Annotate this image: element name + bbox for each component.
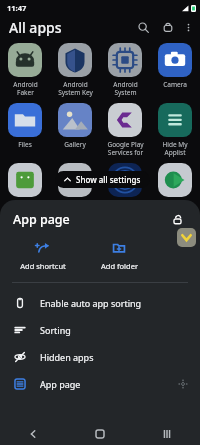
button[interactable]: Hidden apps [0, 343, 200, 370]
button[interactable]: Google Play Services for [100, 99, 150, 159]
staticText: Android System Key [58, 80, 93, 97]
staticText: Camera [163, 80, 187, 89]
staticText: App page [13, 211, 70, 228]
button[interactable]: Camera [150, 39, 200, 99]
button[interactable] [100, 159, 150, 219]
button[interactable]: Android System Key [50, 39, 100, 99]
staticText: Android Faker [13, 80, 38, 97]
staticText: All apps [9, 18, 62, 37]
staticText: Gallery [64, 140, 86, 149]
staticText: Add shortcut [20, 261, 66, 271]
button[interactable]: Add folder [81, 240, 157, 271]
button[interactable]: Sorting [0, 316, 200, 343]
button[interactable] [50, 159, 100, 219]
button[interactable]: Store [157, 16, 179, 38]
staticText: Show all settings [76, 174, 141, 185]
staticText: Google Play Services for [107, 140, 144, 157]
staticText: App page [40, 378, 81, 390]
button[interactable]: Enable auto app sorting [0, 289, 200, 316]
staticText: Hidden apps [40, 351, 94, 363]
button[interactable]: Home [66, 423, 133, 445]
button[interactable]: Add shortcut [5, 240, 81, 271]
staticText: Enable auto app sorting [40, 297, 142, 309]
staticText: Sorting [40, 324, 71, 336]
button[interactable] [150, 159, 200, 219]
button[interactable]: More options [179, 18, 197, 36]
button[interactable]: Show all settings [55, 171, 150, 188]
button[interactable]: Files [0, 99, 50, 159]
staticText: Android System [113, 80, 138, 97]
button[interactable]: Lock [167, 209, 187, 229]
button[interactable]: Gallery [50, 99, 100, 159]
button[interactable]: Search [132, 16, 154, 38]
staticText: Add folder [101, 261, 138, 271]
staticText: Files [18, 140, 32, 149]
button[interactable]: Hide My Applist [150, 99, 200, 159]
button[interactable]: Recents [133, 423, 200, 445]
staticText: 11:47 [7, 3, 27, 13]
button[interactable]: Android Faker [0, 39, 50, 99]
button[interactable]: App page [0, 370, 200, 397]
button[interactable]: Android System [100, 39, 150, 99]
button[interactable] [0, 159, 50, 219]
button[interactable]: Collapse [177, 228, 196, 247]
button[interactable]: Back [0, 423, 66, 445]
staticText: Hide My Applist [162, 140, 188, 157]
